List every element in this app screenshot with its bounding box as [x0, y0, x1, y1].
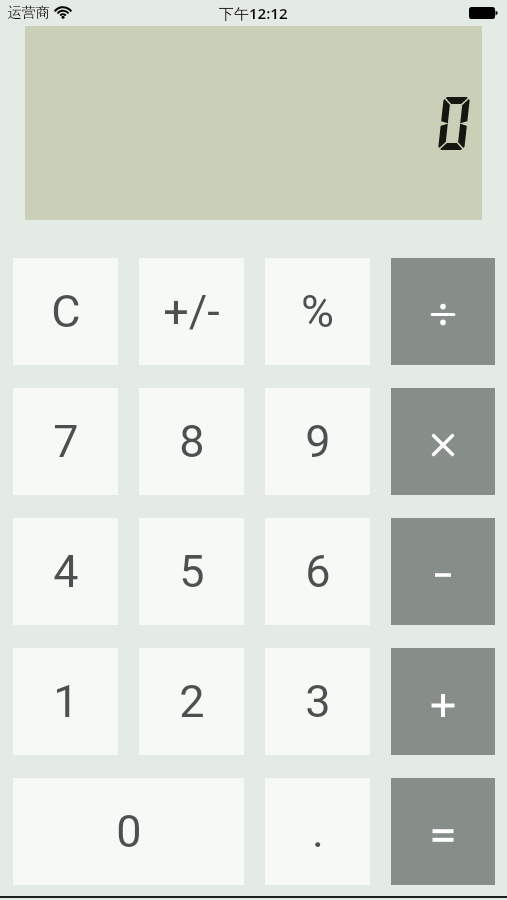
- button[interactable]: 5: [139, 518, 244, 625]
- staticText: 4: [53, 545, 79, 598]
- button[interactable]: 0: [13, 778, 244, 885]
- button[interactable]: 8: [139, 388, 244, 495]
- staticText: %: [301, 285, 334, 338]
- staticText: 0: [116, 805, 142, 858]
- button[interactable]: +/-: [139, 258, 244, 365]
- staticText: .: [312, 805, 324, 858]
- button[interactable]: %: [265, 258, 370, 365]
- staticText: 7: [53, 415, 79, 468]
- button[interactable]: 7: [13, 388, 118, 495]
- staticText: 9: [305, 415, 331, 468]
- button[interactable]: 2: [139, 648, 244, 755]
- staticText: +/-: [163, 285, 220, 338]
- button[interactable]: .: [265, 778, 370, 885]
- staticText: 2: [179, 675, 205, 728]
- button[interactable]: [391, 258, 495, 365]
- button[interactable]: 6: [265, 518, 370, 625]
- button[interactable]: [391, 388, 495, 495]
- staticText: C: [51, 285, 81, 338]
- staticText: 下午12:12: [219, 3, 288, 23]
- button[interactable]: [391, 778, 495, 885]
- button[interactable]: 4: [13, 518, 118, 625]
- staticText: 5: [179, 545, 205, 598]
- button[interactable]: 9: [265, 388, 370, 495]
- button[interactable]: 3: [265, 648, 370, 755]
- button[interactable]: 1: [13, 648, 118, 755]
- staticText: 6: [305, 545, 331, 598]
- button[interactable]: [391, 648, 495, 755]
- button[interactable]: [391, 518, 495, 625]
- staticText: 运营商: [8, 4, 50, 22]
- staticText: 1: [53, 675, 79, 728]
- staticText: 3: [305, 675, 331, 728]
- staticText: 8: [179, 415, 205, 468]
- button[interactable]: C: [13, 258, 118, 365]
